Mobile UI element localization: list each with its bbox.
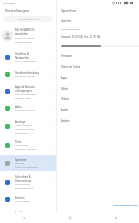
staticText: Akku xyxy=(15,105,22,109)
button[interactable]: Daten im Cache xyxy=(56,61,139,72)
staticText: Einstellungen xyxy=(5,8,30,13)
button[interactable]: Akku xyxy=(0,100,56,117)
button[interactable]: Geräteverbindung xyxy=(0,66,56,82)
staticText: Sicherheit & Datenschutz xyxy=(15,175,32,183)
staticText: Apps & Benach- richtigungen xyxy=(15,85,36,93)
staticText: Konten xyxy=(15,196,25,200)
staticText: Apps xyxy=(61,76,68,80)
staticText: Zugriff auf weitere Huawei-Services xyxy=(15,37,35,43)
button[interactable]: Letzte Apps xyxy=(93,212,139,223)
button[interactable]: SPEICHERBEREINIGER xyxy=(56,199,139,210)
button[interactable]: Einstellungen suchen xyxy=(4,16,52,22)
staticText: INTERNER SPEICHER xyxy=(61,28,80,31)
staticText: Cloud, Konten xyxy=(15,200,30,203)
button[interactable]: Mit HUAWEI ID anmelden xyxy=(0,25,56,45)
staticText: Fingerabdruck, Bildschirmsperre xyxy=(15,183,33,189)
staticText: Videos xyxy=(61,97,70,101)
button[interactable]: Apps xyxy=(56,72,139,83)
button[interactable]: Zurück xyxy=(0,212,47,223)
staticText: Speicher xyxy=(61,8,77,13)
button[interactable]: Videos xyxy=(56,93,139,104)
button[interactable]: Drahtlos & Netzwerke xyxy=(0,49,56,66)
staticText: Einstellungen suchen xyxy=(18,18,39,21)
button[interactable]: Speicher xyxy=(56,16,139,25)
staticText: Speicher xyxy=(61,19,72,23)
staticText: Firmware xyxy=(61,54,73,58)
button[interactable]: Andere xyxy=(56,115,139,126)
button[interactable]: Bilder xyxy=(56,83,139,94)
staticText: Stromsparen, Akku xyxy=(15,109,36,112)
button[interactable]: Töne xyxy=(0,135,56,155)
staticText: Intelligente Unterstützung xyxy=(15,211,35,219)
staticText: Geräteverbindung xyxy=(15,71,40,75)
staticText: SPEICHERBEREINIGER xyxy=(113,203,138,206)
button[interactable]: Apps & Benach- richtigungen xyxy=(0,82,56,101)
staticText: Anzeige xyxy=(15,120,26,124)
button[interactable]: Audio xyxy=(56,104,139,115)
staticText: Audio xyxy=(61,108,69,112)
staticText: Bilder xyxy=(61,87,69,91)
staticText: Daten im Cache xyxy=(61,65,81,69)
staticText: Töne xyxy=(15,140,22,144)
staticText: Speicher, Speicherbereinigung xyxy=(15,162,38,168)
staticText: Speicher xyxy=(15,158,27,162)
staticText: WLAN, Mobile Daten xyxy=(15,60,37,63)
button[interactable]: Anzeige xyxy=(0,117,56,136)
button[interactable]: Firmware xyxy=(56,50,139,61)
staticText: Gesamt: 32,00 GB, frei: 21,76 GB xyxy=(61,35,101,39)
staticText: Bluetooth, Drucken xyxy=(15,75,36,78)
staticText: Augen schonen, Startbildschirmstil, Hint… xyxy=(15,124,35,134)
staticText: Drahtlos & Netzwerke xyxy=(15,52,30,60)
staticText: Andere xyxy=(61,119,70,123)
button[interactable]: Intelligente Unterstützung xyxy=(0,207,56,223)
button[interactable]: Sicherheit & Datenschutz xyxy=(0,171,56,193)
button[interactable]: Startbildschirm xyxy=(47,212,93,223)
staticText: Kein Dienst xyxy=(3,2,16,5)
button[interactable]: Speicher xyxy=(0,155,56,171)
staticText: Mit HUAWEI ID anmelden xyxy=(15,28,35,36)
staticText: Benachrichtigungen, Standard-Apps xyxy=(15,93,38,99)
staticText: Nicht stören, Klingelton, Vibration xyxy=(15,144,37,150)
button[interactable]: Konten xyxy=(0,192,56,207)
